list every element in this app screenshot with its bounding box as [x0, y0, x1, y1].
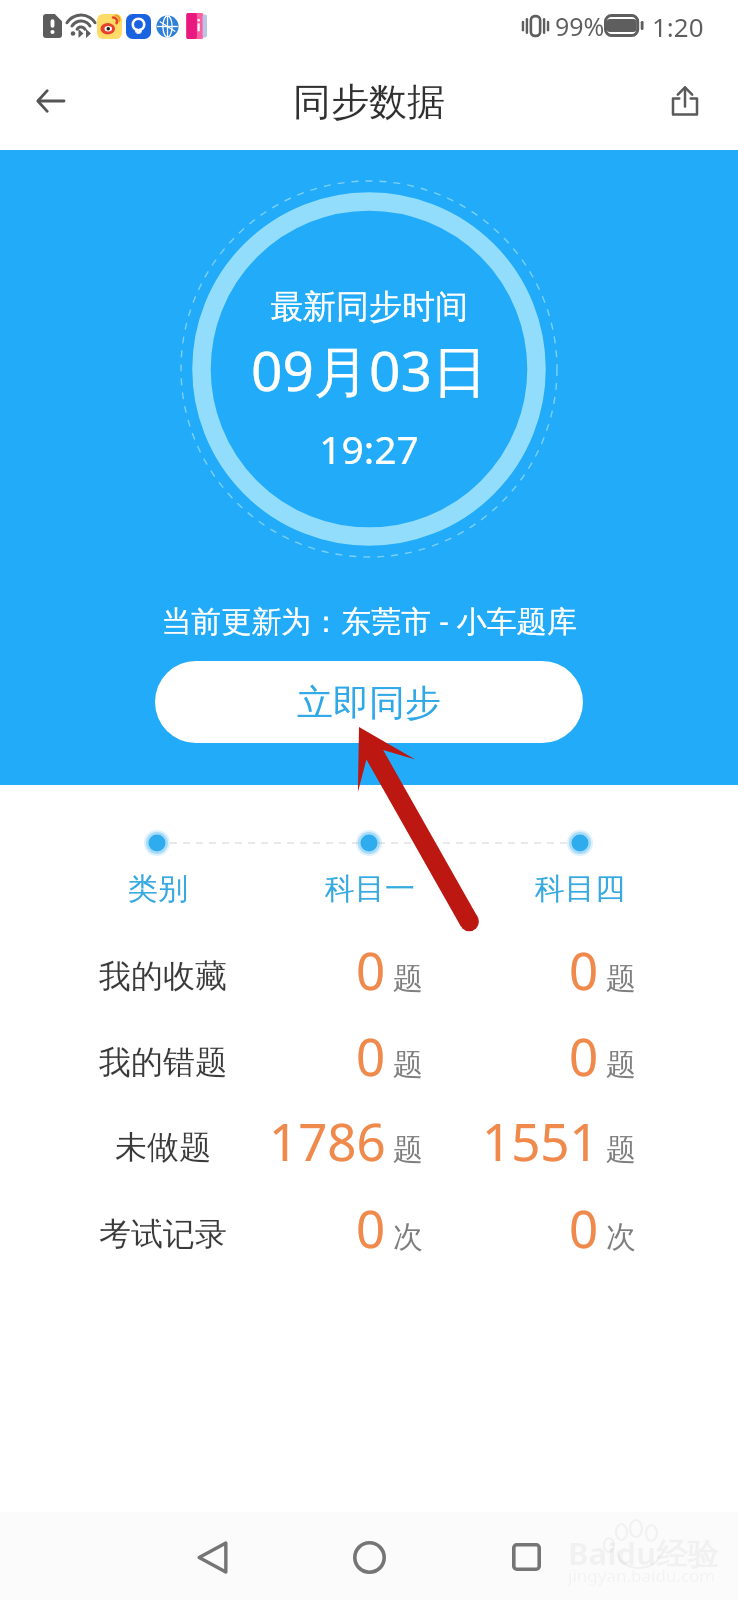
staticText: jingyan.baidu.com	[568, 1564, 716, 1587]
staticText: 同步数据	[119, 78, 619, 126]
staticText: 我的错题	[99, 1042, 227, 1082]
staticText: 题	[393, 1131, 423, 1169]
button[interactable]: 我的收藏	[0, 933, 738, 1019]
staticText: Baidu经验	[568, 1532, 719, 1574]
button[interactable]: 类别	[68, 857, 248, 921]
staticText: 题	[393, 1046, 423, 1084]
button[interactable]: 未做题	[0, 1104, 738, 1190]
staticText: 最新同步时间	[270, 286, 468, 328]
staticText: 类别	[128, 870, 188, 908]
staticText: 19:27	[319, 422, 419, 475]
button[interactable]: Home	[329, 1517, 409, 1597]
button[interactable]: Recents	[486, 1517, 566, 1597]
staticText: 0	[356, 1193, 386, 1262]
button[interactable]: Navigate back	[172, 1517, 252, 1597]
staticText: 当前更新为：东莞市 - 小车题库	[161, 600, 577, 641]
staticText: 1786	[269, 1106, 386, 1175]
staticText: 未做题	[115, 1127, 211, 1167]
staticText: 1551	[482, 1106, 599, 1175]
staticText: 0	[356, 935, 386, 1004]
staticText: 次	[393, 1218, 423, 1256]
button[interactable]: 考试记录	[0, 1191, 738, 1277]
staticText: 次	[606, 1218, 636, 1256]
button[interactable]: Back	[12, 63, 88, 139]
button[interactable]: 科目四	[490, 857, 670, 921]
staticText: 题	[606, 1046, 636, 1084]
staticText: 科目四	[535, 870, 625, 908]
staticText: 我的收藏	[99, 956, 227, 996]
staticText: 1:20	[652, 9, 704, 44]
staticText: 0	[569, 1021, 599, 1090]
staticText: 题	[606, 1131, 636, 1169]
staticText: 99%	[555, 9, 605, 43]
button[interactable]: 科目一	[280, 857, 460, 921]
button[interactable]: 我的错题	[0, 1019, 738, 1105]
staticText: 0	[569, 1193, 599, 1262]
staticText: 0	[356, 1021, 386, 1090]
button[interactable]: 立即同步	[155, 661, 583, 743]
staticText: 考试记录	[99, 1214, 227, 1254]
staticText: 题	[606, 960, 636, 998]
staticText: 科目一	[325, 870, 415, 908]
staticText: 立即同步	[297, 680, 441, 725]
button[interactable]: Share	[647, 62, 723, 138]
staticText: 0	[569, 935, 599, 1004]
staticText: 09月03日	[251, 332, 487, 407]
staticText: 题	[393, 960, 423, 998]
